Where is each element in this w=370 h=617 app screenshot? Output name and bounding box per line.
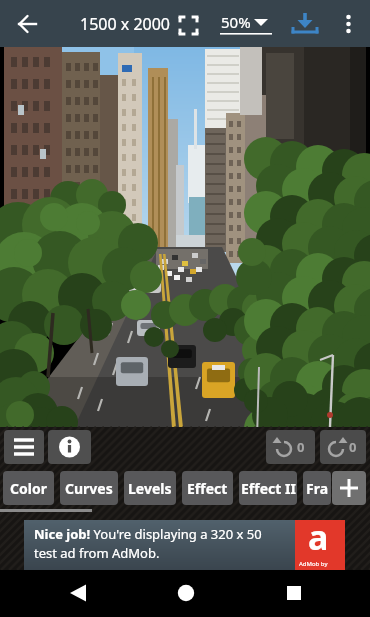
button[interactable] bbox=[332, 471, 366, 505]
staticText: Effect bbox=[187, 479, 228, 498]
staticText: test ad from AdMob. bbox=[34, 544, 160, 562]
button[interactable] bbox=[168, 576, 204, 610]
button[interactable]: Fra bbox=[303, 471, 331, 505]
staticText: Effect II bbox=[241, 479, 296, 498]
button[interactable]: Effect II bbox=[239, 471, 297, 505]
button[interactable] bbox=[60, 576, 96, 610]
button[interactable]: 50% bbox=[215, 6, 277, 40]
button[interactable] bbox=[334, 8, 364, 40]
button[interactable]: Color bbox=[3, 471, 54, 505]
staticText: 1500 x 2000 bbox=[80, 13, 171, 35]
button[interactable]: Curves bbox=[60, 471, 118, 505]
staticText: Fra bbox=[306, 479, 329, 498]
button[interactable]: Effect bbox=[182, 471, 233, 505]
button[interactable] bbox=[48, 430, 91, 464]
staticText: 0 bbox=[297, 438, 305, 456]
button[interactable]: 0 bbox=[320, 430, 366, 464]
button[interactable] bbox=[4, 430, 44, 464]
button[interactable]: Nice job! You're displaying a 320 x 50 bbox=[24, 520, 345, 570]
button[interactable]: Levels bbox=[124, 471, 176, 505]
staticText: Levels bbox=[128, 479, 172, 498]
button[interactable] bbox=[276, 576, 312, 610]
staticText: 50% bbox=[221, 12, 251, 32]
button[interactable] bbox=[288, 8, 322, 40]
staticText: Curves bbox=[65, 479, 113, 498]
button[interactable] bbox=[10, 8, 44, 40]
staticText: 0 bbox=[349, 438, 357, 456]
staticText: Nice job! You're displaying a 320 x 50 bbox=[34, 525, 262, 543]
staticText: Color bbox=[10, 479, 47, 498]
button[interactable]: 0 bbox=[266, 430, 315, 464]
button[interactable] bbox=[172, 10, 205, 40]
staticText: a bbox=[308, 514, 329, 560]
staticText: AdMob by Google bbox=[299, 560, 349, 576]
